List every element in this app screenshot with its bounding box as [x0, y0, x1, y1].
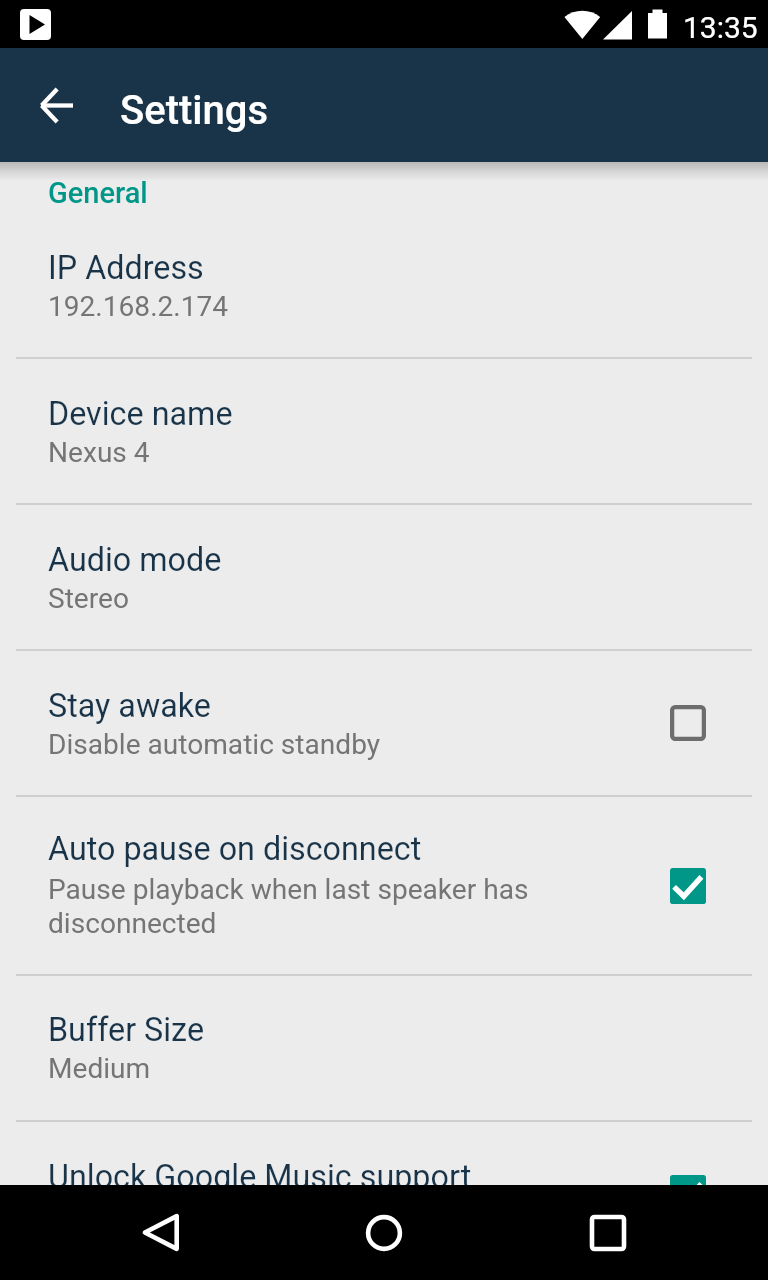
button[interactable]: General: [0, 162, 768, 211]
staticText: Buffer Size: [48, 1011, 205, 1049]
button[interactable]: Unlock Google Music support: [0, 1122, 768, 1264]
button[interactable]: Recent apps: [560, 1185, 656, 1280]
button[interactable]: IP Address: [0, 212, 768, 358]
staticText: General: [48, 176, 148, 210]
staticText: Settings: [120, 87, 269, 134]
button[interactable]: Stay awake: [0, 651, 768, 795]
staticText: Medium: [48, 1052, 151, 1085]
staticText: Device name: [48, 395, 233, 433]
staticText: Pause playback when last speaker has dis…: [48, 873, 644, 940]
staticText: Nexus 4: [48, 436, 150, 469]
button[interactable]: Auto pause on disconnect: [0, 797, 768, 974]
staticText: Unlock Google Music support: [48, 1158, 472, 1196]
staticText: Auto pause on disconnect: [48, 830, 422, 868]
button[interactable]: Buffer Size: [0, 976, 768, 1120]
staticText: In-app purchase: [48, 1199, 249, 1232]
staticText: 192.168.2.174: [48, 290, 229, 323]
button[interactable]: Audio mode: [0, 506, 768, 650]
button[interactable]: Home: [336, 1185, 432, 1280]
button[interactable]: Navigate up: [20, 69, 92, 141]
staticText: Audio mode: [48, 541, 222, 579]
staticText: Stay awake: [48, 687, 211, 725]
staticText: Disable automatic standby: [48, 728, 381, 761]
button[interactable]: Stay awake, unchecked: [670, 705, 706, 741]
button[interactable]: Back: [112, 1185, 208, 1280]
staticText: 13:35: [683, 10, 758, 45]
button[interactable]: Unlock Google Music support, checked: [670, 1175, 706, 1211]
staticText: IP Address: [48, 249, 204, 287]
button[interactable]: Auto pause on disconnect, checked: [670, 868, 706, 904]
staticText: Stereo: [48, 582, 129, 615]
button[interactable]: Device name: [0, 360, 768, 504]
